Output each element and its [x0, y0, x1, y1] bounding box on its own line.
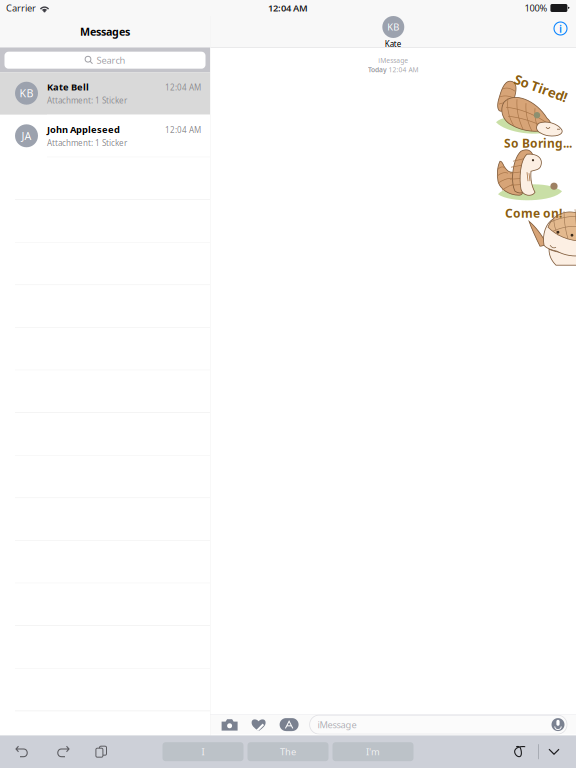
staticText: Kate [385, 38, 402, 49]
staticText: I [201, 745, 204, 758]
button[interactable]: Redo [52, 742, 73, 761]
staticText: Messages [80, 24, 130, 39]
staticText: So Tired! [513, 79, 569, 97]
staticText: KB [387, 21, 399, 33]
staticText: 12:04 AM [268, 2, 308, 14]
staticText: Come on! [505, 205, 562, 221]
staticText: Carrier [6, 2, 36, 14]
button[interactable]: The [247, 742, 328, 761]
staticText: 100% [524, 2, 547, 14]
staticText: i [559, 21, 562, 36]
staticText: JA [21, 129, 31, 143]
button[interactable]: Scribble [508, 742, 530, 762]
staticText: The [280, 745, 296, 758]
staticText: 12:04 AM [388, 65, 418, 74]
button[interactable]: I [162, 742, 243, 761]
button[interactable]: Undo [12, 742, 33, 761]
staticText: I'm [366, 745, 380, 758]
staticText: Search [96, 54, 125, 66]
staticText: Attachment: 1 Sticker [47, 138, 127, 148]
button[interactable]: Apps [277, 715, 302, 734]
button[interactable]: Digital Touch [249, 715, 269, 734]
staticText: John Appleseed [47, 123, 120, 136]
button[interactable]: KB [382, 16, 404, 49]
button[interactable]: Hide Keyboard [544, 744, 564, 759]
staticText: iMessage [378, 56, 408, 65]
button[interactable]: KB [0, 72, 210, 115]
staticText: KB [19, 86, 33, 100]
staticText: Today [368, 65, 387, 74]
button[interactable]: JA [0, 115, 210, 157]
staticText: iMessage [318, 718, 357, 731]
staticText: 12:04 AM [165, 125, 201, 135]
staticText: 12:04 AM [165, 82, 201, 93]
button[interactable]: Camera [219, 716, 241, 734]
button[interactable]: iMessage [310, 715, 567, 734]
button[interactable]: I'm [332, 742, 413, 761]
button[interactable]: Search [0, 48, 210, 72]
staticText: Attachment: 1 Sticker [47, 95, 127, 106]
staticText: Kate Bell [47, 81, 89, 93]
button[interactable]: Paste [91, 742, 111, 762]
button[interactable]: Details [549, 17, 572, 40]
staticText: So Boring... [504, 135, 572, 151]
